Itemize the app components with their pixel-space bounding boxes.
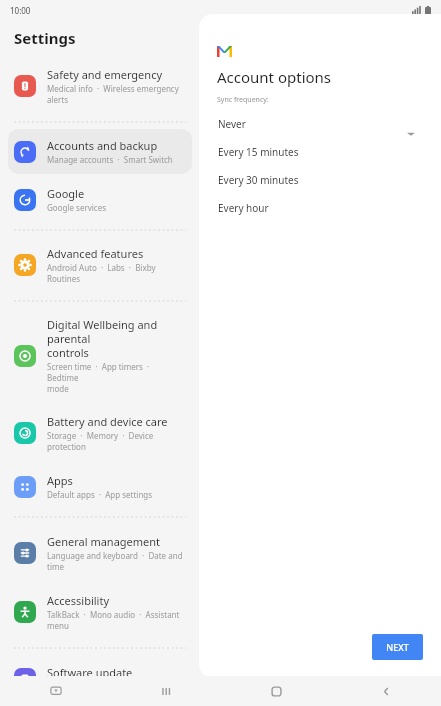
staticText: Storage · Memory · Device protection <box>47 430 184 452</box>
button[interactable]: Advanced features <box>8 237 192 293</box>
staticText: Manage accounts · Smart Switch <box>47 154 173 165</box>
staticText: Software update <box>47 665 133 680</box>
staticText: Medical info · Wireless emergency alerts <box>47 83 184 105</box>
staticText: Sync frequency: <box>217 95 269 105</box>
staticText: Default apps · App settings <box>47 489 153 500</box>
button[interactable]: Accounts and backup <box>8 129 192 174</box>
staticText: Advanced features <box>47 246 144 261</box>
button[interactable]: Home <box>221 676 331 706</box>
staticText: General management <box>47 534 161 549</box>
staticText: Settings <box>14 28 76 48</box>
staticText: 10:00 <box>10 5 31 16</box>
staticText: Every hour <box>218 201 269 215</box>
staticText: Battery and device care <box>47 414 168 429</box>
button[interactable]: Software update <box>8 656 192 701</box>
button[interactable]: Every hour <box>207 194 405 221</box>
staticText: Google <box>47 186 85 201</box>
staticText: Digital Wellbeing and parental controls <box>47 317 184 360</box>
staticText: Account options <box>217 67 332 87</box>
button[interactable]: General management <box>8 525 192 581</box>
staticText: Every 15 minutes <box>218 145 299 159</box>
button[interactable]: Every 15 minutes <box>207 138 405 166</box>
button[interactable]: NEXT <box>372 634 423 660</box>
staticText: Google services <box>47 202 107 213</box>
button[interactable]: Never <box>207 110 405 138</box>
button[interactable]: Google <box>8 177 192 222</box>
staticText: Safety and emergency <box>47 67 163 82</box>
button[interactable]: Apps <box>8 464 192 509</box>
button[interactable]: Digital Wellbeing and parental controls <box>8 309 192 402</box>
staticText: Download and install <box>47 681 126 692</box>
staticText: Accessibility <box>47 593 110 608</box>
button[interactable]: Battery and device care <box>8 405 192 461</box>
staticText: Screen time · App timers · Bedtime mode <box>47 361 184 394</box>
button[interactable]: Every 30 minutes <box>207 166 405 194</box>
staticText: Apps <box>47 473 73 488</box>
staticText: NEXT <box>386 641 409 653</box>
button[interactable]: Back <box>331 676 441 706</box>
staticText: Never <box>218 117 246 131</box>
button[interactable]: Accessibility <box>8 584 192 640</box>
staticText: Language and keyboard · Date and time <box>47 550 184 572</box>
staticText: Every 30 minutes <box>218 173 299 187</box>
button[interactable]: Capture <box>0 676 111 706</box>
staticText: Accounts and backup <box>47 138 158 153</box>
button[interactable]: Safety and emergency <box>8 58 192 114</box>
button[interactable]: Recents <box>111 676 221 706</box>
staticText: Android Auto · Labs · Bixby Routines <box>47 262 184 284</box>
staticText: TalkBack · Mono audio · Assistant menu <box>47 609 184 631</box>
